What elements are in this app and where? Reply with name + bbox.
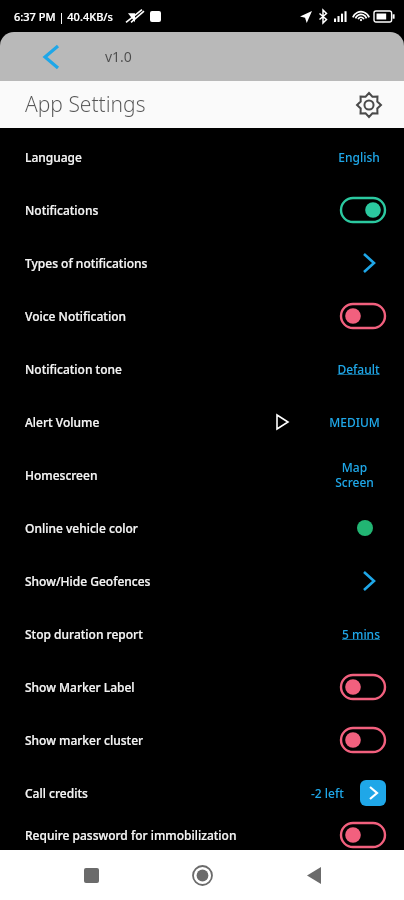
- button[interactable]: Settings: [352, 88, 386, 122]
- button[interactable]: Play: [270, 410, 294, 434]
- button[interactable]: Off: [340, 303, 386, 329]
- staticText: Show/Hide Geofences: [25, 573, 151, 589]
- button[interactable]: Show/Hide Geofences: [0, 554, 404, 607]
- button[interactable]: Alert Volume: [0, 395, 404, 448]
- button[interactable]: Home: [181, 854, 223, 896]
- button[interactable]: Call credits: [0, 766, 404, 819]
- staticText: MEDIUM: [329, 414, 380, 430]
- other: Open: [352, 246, 386, 280]
- button[interactable]: Back: [34, 40, 68, 74]
- button[interactable]: Back: [293, 854, 335, 896]
- button[interactable]: Notification tone: [0, 342, 404, 395]
- staticText: Default: [337, 361, 380, 377]
- button[interactable]: Voice Notification: [0, 289, 404, 342]
- staticText: Call credits: [25, 785, 88, 801]
- staticText: Types of notifications: [25, 255, 148, 271]
- button[interactable]: Off: [340, 674, 386, 700]
- button[interactable]: Show Marker Label: [0, 660, 404, 713]
- staticText: 6:37 PM | 40.4KB/s: [14, 9, 113, 24]
- button[interactable]: Pick color: [352, 515, 378, 541]
- button[interactable]: Language: [0, 130, 404, 183]
- staticText: Map Screen: [335, 459, 374, 490]
- button[interactable]: Notifications: [0, 183, 404, 236]
- staticText: Voice Notification: [25, 308, 127, 324]
- staticText: Notifications: [25, 202, 99, 218]
- button[interactable]: Show marker cluster: [0, 713, 404, 766]
- staticText: 5 mins: [342, 626, 380, 642]
- button[interactable]: Homescreen: [0, 448, 404, 501]
- button[interactable]: Off: [340, 822, 386, 848]
- staticText: English: [338, 149, 380, 165]
- button[interactable]: Recent apps: [70, 854, 112, 896]
- staticText: Alert Volume: [25, 414, 100, 430]
- button[interactable]: Types of notifications: [0, 236, 404, 289]
- staticText: -2 left: [311, 785, 344, 801]
- button[interactable]: Off: [340, 727, 386, 753]
- staticText: Online vehicle color: [25, 520, 138, 536]
- staticText: v1.0: [105, 47, 132, 66]
- staticText: Homescreen: [25, 467, 98, 483]
- staticText: Show Marker Label: [25, 679, 135, 695]
- staticText: Stop duration report: [25, 626, 143, 642]
- staticText: App Settings: [25, 90, 146, 119]
- button[interactable]: Buy credits: [360, 780, 386, 806]
- button[interactable]: Require password for immobilization: [0, 819, 404, 850]
- button[interactable]: Online vehicle color: [0, 501, 404, 554]
- staticText: Require password for immobilization: [25, 827, 237, 843]
- other: Open: [352, 564, 386, 598]
- staticText: Notification tone: [25, 361, 122, 377]
- button[interactable]: On: [340, 197, 386, 223]
- button[interactable]: Stop duration report: [0, 607, 404, 660]
- staticText: Language: [25, 149, 82, 165]
- staticText: Show marker cluster: [25, 732, 144, 748]
